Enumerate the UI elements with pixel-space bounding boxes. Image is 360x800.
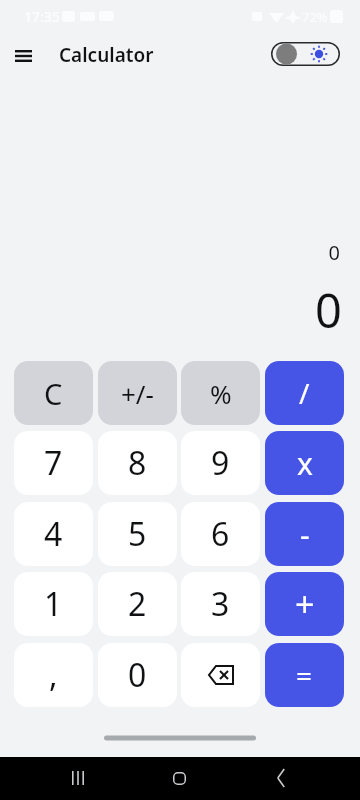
button[interactable]: 9 xyxy=(181,431,260,495)
staticText: 2 xyxy=(128,582,147,626)
button[interactable]: - xyxy=(265,502,344,566)
staticText: 72% xyxy=(302,8,328,26)
button[interactable]: C xyxy=(14,361,93,425)
staticText: 0 xyxy=(0,239,340,266)
button[interactable]: 2 xyxy=(98,572,177,636)
button[interactable]: x xyxy=(265,431,344,495)
button[interactable]: 6 xyxy=(181,502,260,566)
button[interactable]: 3 xyxy=(181,572,260,636)
button[interactable] xyxy=(8,43,38,69)
staticText: - xyxy=(300,514,310,555)
button[interactable]: , xyxy=(14,643,93,707)
button[interactable]: + xyxy=(265,572,344,636)
button[interactable] xyxy=(263,760,299,796)
staticText: 0 xyxy=(128,653,147,697)
staticText: = xyxy=(296,656,313,694)
button[interactable] xyxy=(161,760,197,796)
staticText: 3 xyxy=(211,582,230,626)
staticText: +/- xyxy=(121,376,154,411)
button[interactable]: / xyxy=(265,361,344,425)
staticText: C xyxy=(44,374,63,413)
staticText: 1 xyxy=(44,582,63,626)
staticText: 7 xyxy=(44,441,63,485)
button[interactable]: 1 xyxy=(14,572,93,636)
button[interactable]: +/- xyxy=(98,361,177,425)
button[interactable]: 5 xyxy=(98,502,177,566)
button[interactable]: % xyxy=(181,361,260,425)
staticText: / xyxy=(299,374,310,412)
staticText: 4 xyxy=(44,512,63,556)
staticText: 6 xyxy=(211,512,230,556)
button[interactable]: 8 xyxy=(98,431,177,495)
staticText: , xyxy=(49,653,58,697)
staticText: Calculator xyxy=(59,42,154,68)
button[interactable]: 4 xyxy=(14,502,93,566)
staticText: 0 xyxy=(0,278,342,342)
staticText: 8 xyxy=(128,441,147,485)
button[interactable] xyxy=(60,760,96,796)
button[interactable] xyxy=(271,42,340,66)
staticText: 9 xyxy=(211,441,230,485)
button[interactable]: 0 xyxy=(98,643,177,707)
button[interactable] xyxy=(181,643,260,707)
staticText: x xyxy=(297,443,313,484)
staticText: % xyxy=(210,376,232,411)
staticText: + xyxy=(295,581,315,627)
staticText: 5 xyxy=(128,512,147,556)
button[interactable]: 7 xyxy=(14,431,93,495)
staticText: 17:35 xyxy=(24,7,60,26)
button[interactable]: = xyxy=(265,643,344,707)
